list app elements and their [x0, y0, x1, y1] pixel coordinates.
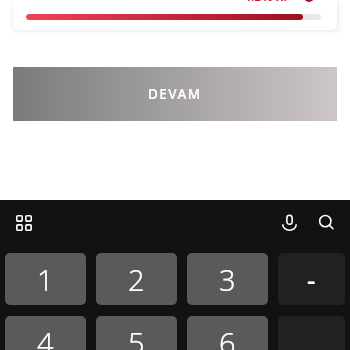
staticText: -	[307, 262, 316, 297]
button[interactable]: Keyboard layouts	[9, 208, 38, 237]
button[interactable]: 4	[5, 316, 86, 350]
staticText: 1.240 XP	[245, 0, 291, 4]
staticText: 1	[37, 260, 54, 299]
staticText: DEVAM	[148, 85, 202, 103]
button[interactable]: 2	[96, 253, 177, 305]
button[interactable]: -	[278, 253, 345, 305]
button[interactable]: 5	[96, 316, 177, 350]
staticText: 6	[219, 323, 236, 350]
button[interactable]: 1	[5, 253, 86, 305]
button[interactable]: Günlük hedefin	[13, 0, 337, 30]
button[interactable]: DEVAM	[13, 67, 337, 121]
staticText: 4	[37, 323, 54, 350]
staticText: 5	[128, 323, 145, 350]
staticText: 3	[219, 260, 236, 299]
button[interactable]: 3	[187, 253, 268, 305]
button[interactable]: Voice input	[275, 208, 304, 237]
button[interactable]: Search	[312, 208, 341, 237]
button[interactable]: 6	[187, 316, 268, 350]
staticText: 2	[128, 260, 145, 299]
